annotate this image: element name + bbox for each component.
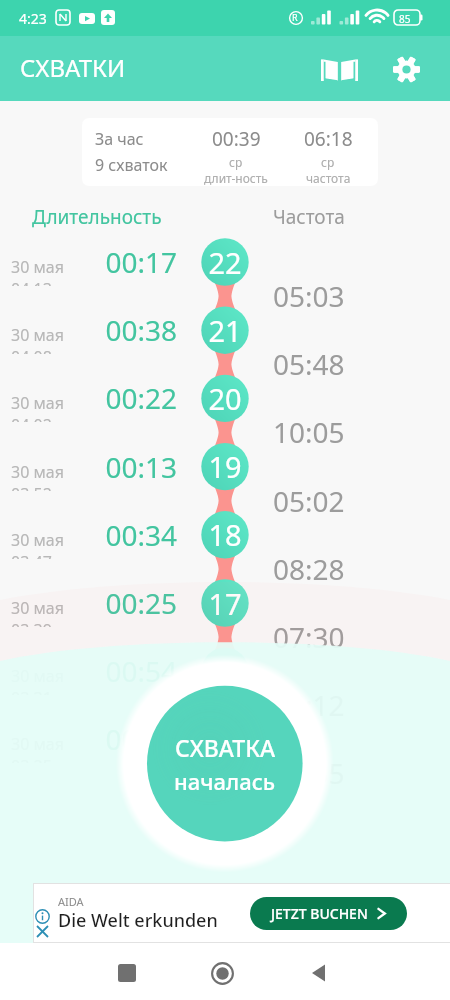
button[interactable]: Home [198,949,246,997]
staticText: 00:38 [86,311,177,349]
staticText: СХВАТКИ [20,51,126,84]
staticText: 00:39 [212,126,261,152]
staticText: 30 мая [11,461,64,483]
staticText: 00:17 [86,243,177,281]
staticText: 08:28 [273,550,345,588]
staticText: За час [95,128,144,150]
staticText: 15 [195,720,255,759]
staticText: 16 [195,652,255,691]
staticText: AIDA [58,894,84,909]
staticText: длит-ность [204,170,268,186]
staticText: 9 схваток [95,154,168,176]
staticText: 21 [195,311,255,350]
staticText: ср [229,154,243,170]
other: Close ad [36,925,49,938]
staticText: 4:23 [19,9,47,28]
staticText: 03:52 [11,483,52,491]
staticText: 30 мая [11,256,64,278]
staticText: 04:08 [11,346,52,354]
staticText: 00:13 [86,448,177,486]
button[interactable]: Back [295,949,343,997]
button[interactable]: СХВАТКА [147,686,303,842]
staticText: 19 [195,447,255,486]
button[interactable]: За час [82,118,378,186]
button[interactable]: Guide [315,45,363,93]
staticText: 10:05 [273,413,345,451]
staticText: ср [321,154,335,170]
staticText: 05:48 [273,345,345,383]
staticText: 00:22 [86,379,177,417]
staticText: началась [174,766,276,796]
staticText: 18 [195,515,255,554]
staticText: 00:25 [86,584,177,622]
staticText: 00:54 [86,652,177,690]
staticText: 17 [195,584,255,623]
staticText: 03:47 [11,551,52,559]
staticText: СХВАТКА [175,732,276,763]
staticText: R [292,11,298,23]
staticText: 03:39 [11,619,52,627]
button[interactable]: Recent apps [103,949,151,997]
staticText: 30 мая [11,392,64,414]
staticText: 07:30 [273,618,345,656]
staticText: 00:34 [86,516,177,554]
button[interactable]: JETZT BUCHEN [250,897,407,930]
staticText: 05:02 [273,482,345,520]
staticText: 04:55 [273,754,345,792]
staticText: 06:12 [273,686,345,724]
staticText: 04:13 [11,278,52,286]
other: Ad info [35,909,50,924]
staticText: 30 мая [11,597,64,619]
staticText: JETZT BUCHEN [271,904,368,923]
staticText: Длительность [32,204,162,230]
staticText: 00:31 [86,720,177,758]
staticText: Частота [273,204,345,230]
staticText: 22 [195,243,255,282]
staticText: 20 [195,379,255,418]
staticText: Die Welt erkunden [58,908,218,933]
staticText: частота [306,170,351,186]
staticText: 85 [399,12,411,26]
staticText: 30 мая [11,529,64,551]
staticText: 06:18 [304,126,353,152]
staticText: 30 мая [11,324,64,346]
button[interactable] [33,883,450,943]
staticText: 04:02 [11,414,52,422]
staticText: 05:03 [273,277,345,315]
button[interactable]: Settings [382,45,430,93]
